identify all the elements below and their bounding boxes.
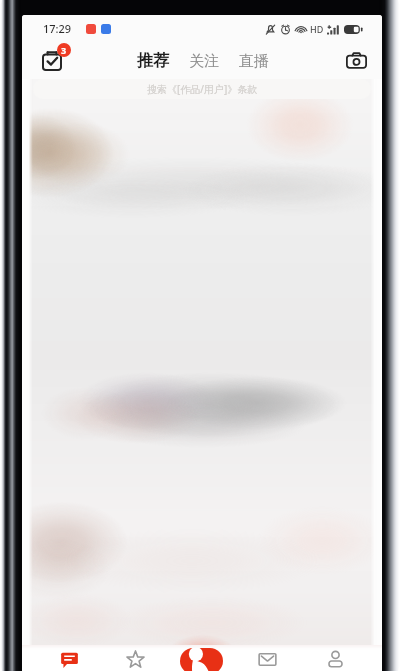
staticText: 推荐 xyxy=(137,51,169,71)
button[interactable]: Messages xyxy=(45,645,93,671)
button[interactable]: 搜索《[作品/用户]》条款 xyxy=(33,79,371,99)
button[interactable]: Tasks xyxy=(35,44,69,78)
button[interactable]: 关注 xyxy=(181,47,227,76)
button[interactable]: 推荐 xyxy=(129,46,177,76)
staticText: 3 xyxy=(61,44,67,56)
staticText: 关注 xyxy=(189,52,219,71)
staticText: 直播 xyxy=(239,52,269,71)
button[interactable]: Camera xyxy=(339,44,373,78)
button[interactable]: Favorites xyxy=(111,645,159,671)
button[interactable]: 直播 xyxy=(231,47,277,76)
staticText: 17:29 xyxy=(43,21,72,36)
staticText: HD xyxy=(310,23,324,35)
staticText: 搜索《[作品/用户]》条款 xyxy=(147,82,258,96)
button[interactable]: Mail xyxy=(243,645,291,671)
button[interactable]: Post xyxy=(180,648,223,671)
button[interactable]: Profile xyxy=(311,645,359,671)
